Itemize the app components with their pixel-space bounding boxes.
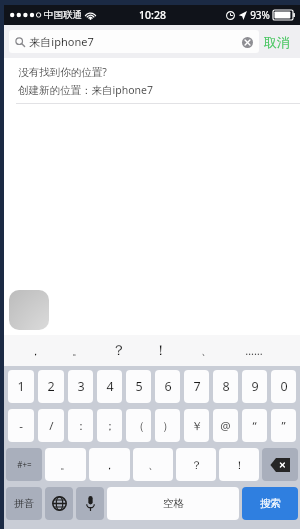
staticText: ？ xyxy=(112,342,126,360)
button[interactable]: 2 xyxy=(38,370,64,403)
button[interactable]: Voice input xyxy=(76,487,104,520)
button[interactable]: 搜索 xyxy=(242,487,298,520)
staticText: 、 xyxy=(201,344,212,358)
staticText: 搜索 xyxy=(260,497,281,510)
staticText: 6 xyxy=(164,378,172,395)
button[interactable]: 1 xyxy=(8,370,34,403)
button[interactable]: Switch keyboard xyxy=(45,487,73,520)
button[interactable]: - xyxy=(8,409,34,442)
button[interactable]: （ xyxy=(126,409,151,442)
button[interactable]: Backspace xyxy=(262,448,298,481)
staticText: ； xyxy=(104,419,116,433)
button[interactable]: ！ xyxy=(219,448,259,481)
staticText: / xyxy=(49,418,54,434)
button[interactable]: @ xyxy=(213,409,238,442)
button[interactable]: 。 xyxy=(56,335,98,366)
button[interactable]: 0 xyxy=(271,370,296,403)
staticText: 9 xyxy=(251,378,259,395)
staticText: 5 xyxy=(135,378,143,395)
button[interactable]: 8 xyxy=(213,370,238,403)
staticText: 拼音 xyxy=(14,497,34,510)
staticText: 、 xyxy=(148,458,159,472)
staticText: ！ xyxy=(234,458,245,472)
staticText: ？ xyxy=(191,458,202,472)
button[interactable]: #+= xyxy=(6,448,42,481)
staticText: 93% xyxy=(250,8,270,22)
staticText: …… xyxy=(245,343,263,358)
button[interactable]: ： xyxy=(68,409,93,442)
button[interactable]: 6 xyxy=(155,370,180,403)
staticText: （ xyxy=(133,419,145,433)
button[interactable]: 取消 xyxy=(259,30,295,53)
staticText: @ xyxy=(220,418,231,434)
staticText: ￥ xyxy=(191,419,203,433)
button[interactable]: ） xyxy=(155,409,180,442)
staticText: 来自iphone7 xyxy=(29,34,94,49)
staticText: ！ xyxy=(154,342,168,360)
staticText: “ xyxy=(252,418,257,434)
staticText: - xyxy=(19,418,23,434)
button[interactable]: “ xyxy=(242,409,267,442)
button[interactable]: 空格 xyxy=(107,487,239,520)
staticText: 没有找到你的位置? xyxy=(18,65,107,79)
button[interactable]: Clear text xyxy=(241,36,253,48)
button[interactable]: 来自iphone7 xyxy=(9,30,259,53)
button[interactable]: 没有找到你的位置? xyxy=(4,58,300,103)
staticText: 4 xyxy=(106,378,114,395)
button[interactable]: ； xyxy=(97,409,122,442)
button[interactable]: 7 xyxy=(184,370,209,403)
button[interactable]: ， xyxy=(14,335,56,366)
staticText: 。 xyxy=(72,344,83,358)
staticText: 取消 xyxy=(264,34,290,50)
button[interactable]: ！ xyxy=(140,335,182,366)
button[interactable]: ？ xyxy=(176,448,216,481)
button[interactable]: 5 xyxy=(126,370,151,403)
button[interactable]: 9 xyxy=(242,370,267,403)
staticText: 8 xyxy=(222,378,230,395)
button[interactable]: 、 xyxy=(182,335,230,366)
staticText: 1 xyxy=(17,378,25,395)
staticText: ” xyxy=(281,418,286,434)
button[interactable]: ， xyxy=(89,448,130,481)
button[interactable]: ？ xyxy=(98,335,140,366)
button[interactable]: 3 xyxy=(68,370,93,403)
staticText: 0 xyxy=(280,378,288,395)
staticText: 10:28 xyxy=(139,8,166,22)
button[interactable]: 、 xyxy=(133,448,173,481)
button[interactable]: ” xyxy=(271,409,296,442)
staticText: ： xyxy=(75,419,87,433)
staticText: 7 xyxy=(193,378,201,395)
button[interactable]: …… xyxy=(230,335,278,366)
staticText: ， xyxy=(30,344,41,358)
button[interactable]: 。 xyxy=(45,448,86,481)
button[interactable]: ￥ xyxy=(184,409,209,442)
staticText: 3 xyxy=(77,378,85,395)
button[interactable]: 拼音 xyxy=(6,487,42,520)
button[interactable]: / xyxy=(38,409,64,442)
staticText: ） xyxy=(162,419,174,433)
button[interactable]: 4 xyxy=(97,370,122,403)
staticText: #+= xyxy=(17,459,32,470)
staticText: 。 xyxy=(60,458,71,472)
staticText: 2 xyxy=(47,378,55,395)
staticText: 中国联通 xyxy=(44,9,82,21)
staticText: 空格 xyxy=(163,497,184,510)
staticText: ， xyxy=(104,458,115,472)
staticText: 创建新的位置：来自iphone7 xyxy=(18,83,153,97)
